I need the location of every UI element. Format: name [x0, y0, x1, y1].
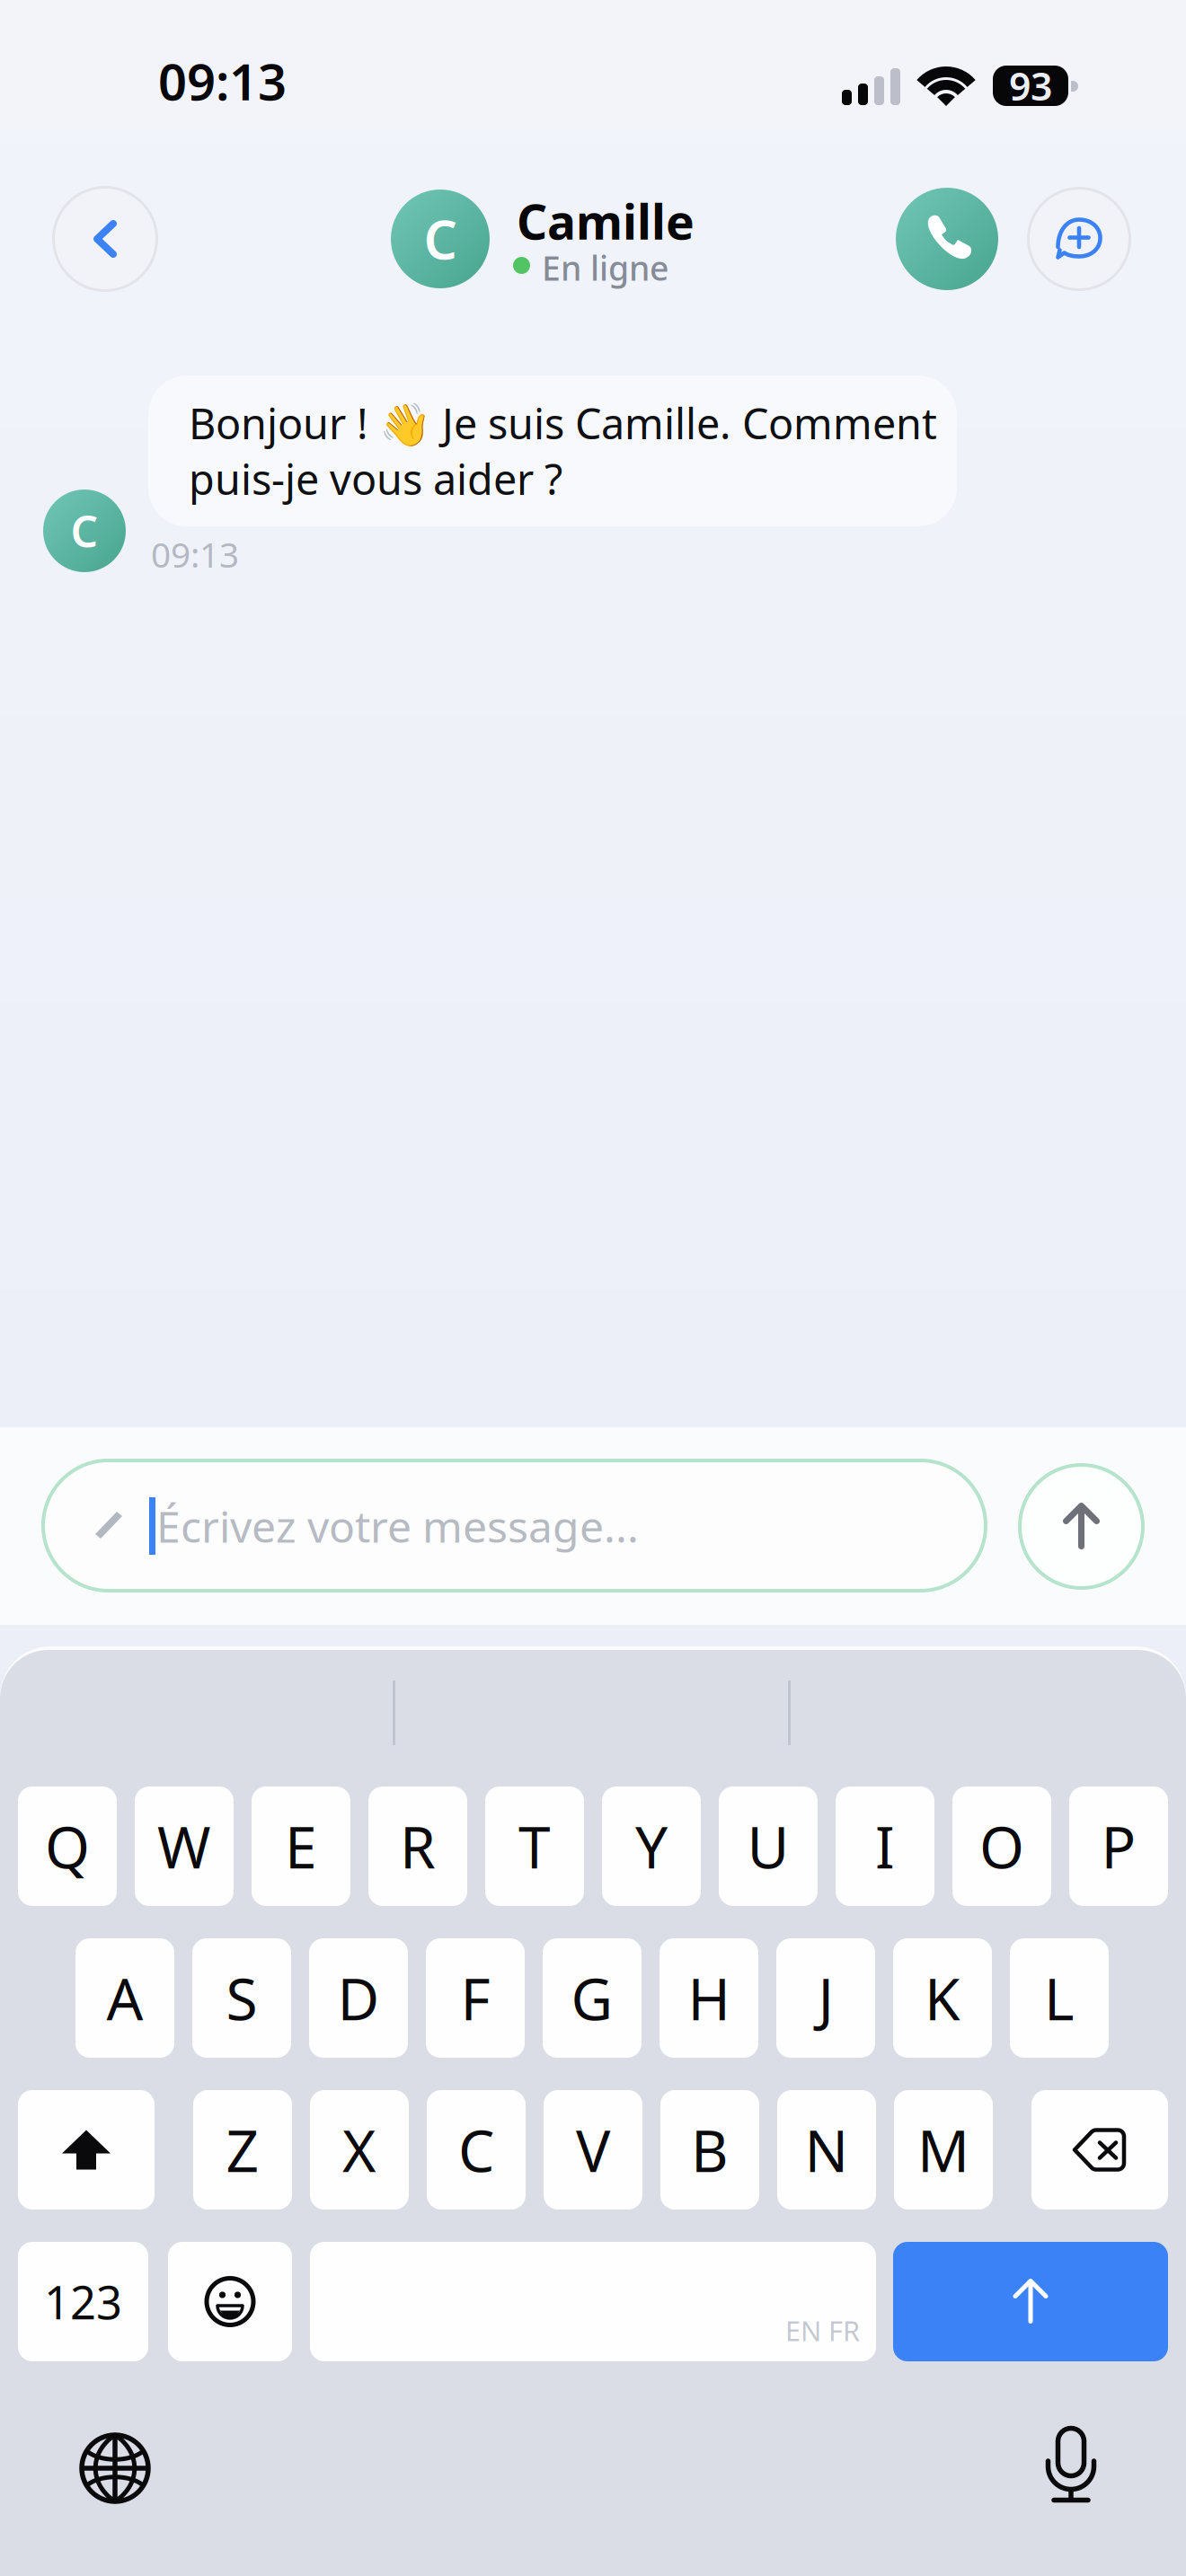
staticText: H — [688, 1960, 730, 2036]
button[interactable]: X — [310, 2090, 409, 2210]
staticText: E — [285, 1808, 317, 1884]
button[interactable]: T — [485, 1786, 584, 1906]
button[interactable]: D — [309, 1938, 408, 2058]
staticText: En ligne — [542, 245, 668, 290]
button[interactable]: A — [75, 1938, 174, 2058]
button[interactable]: Shift — [18, 2090, 155, 2210]
staticText: F — [460, 1960, 490, 2036]
button[interactable]: Dictate — [995, 2406, 1147, 2523]
staticText: W — [157, 1808, 211, 1884]
staticText: X — [342, 2112, 376, 2188]
staticText: M — [917, 2112, 969, 2188]
staticText: 123 — [44, 2271, 122, 2332]
button[interactable]: C — [427, 2090, 526, 2210]
staticText: Q — [45, 1808, 90, 1884]
button[interactable]: S — [192, 1938, 291, 2058]
staticText: G — [571, 1960, 613, 2036]
button[interactable]: Back — [52, 186, 158, 292]
button[interactable]: Return — [893, 2242, 1168, 2361]
staticText: O — [979, 1808, 1024, 1884]
button[interactable]: J — [776, 1938, 875, 2058]
staticText: N — [805, 2112, 849, 2188]
button[interactable]: New chat — [1027, 187, 1131, 291]
staticText: J — [818, 1960, 833, 2036]
staticText: R — [400, 1808, 436, 1884]
button[interactable]: Send — [1018, 1463, 1145, 1590]
staticText: Écrivez votre message... — [156, 1497, 639, 1555]
staticText: 93 — [1009, 60, 1052, 111]
button[interactable]: L — [1010, 1938, 1109, 2058]
staticText: 09:13 — [158, 47, 287, 114]
button[interactable]: M — [894, 2090, 993, 2210]
staticText: Camille — [517, 189, 695, 253]
staticText: C — [71, 502, 98, 559]
button[interactable]: F — [426, 1938, 525, 2058]
staticText: A — [106, 1960, 143, 2036]
button[interactable]: P — [1069, 1786, 1168, 1906]
staticText: Bonjour ! 👋 Je suis Camille. Comment pui… — [189, 395, 937, 506]
button[interactable]: U — [719, 1786, 818, 1906]
button[interactable]: Emoji — [168, 2242, 292, 2361]
staticText: D — [337, 1960, 380, 2036]
staticText: Y — [635, 1808, 668, 1884]
button[interactable]: K — [893, 1938, 992, 2058]
button[interactable]: Delete — [1031, 2090, 1168, 2210]
staticText: U — [747, 1808, 789, 1884]
staticText: I — [875, 1808, 895, 1884]
button[interactable]: G — [543, 1938, 642, 2058]
staticText: V — [576, 2112, 610, 2188]
staticText: S — [226, 1960, 257, 2036]
button[interactable]: Switch keyboard — [34, 2410, 196, 2527]
button[interactable]: Call — [896, 188, 998, 290]
staticText: C — [458, 2112, 494, 2188]
staticText: K — [925, 1960, 960, 2036]
staticText: P — [1101, 1808, 1136, 1884]
button[interactable]: H — [659, 1938, 758, 2058]
button[interactable]: Q — [18, 1786, 117, 1906]
staticText: T — [518, 1808, 551, 1884]
button[interactable]: 123 — [18, 2242, 148, 2361]
staticText: L — [1044, 1960, 1075, 2036]
button[interactable]: R — [368, 1786, 467, 1906]
button[interactable]: O — [952, 1786, 1051, 1906]
button[interactable]: W — [135, 1786, 234, 1906]
button[interactable]: V — [544, 2090, 642, 2210]
button[interactable]: I — [836, 1786, 934, 1906]
staticText: C — [424, 204, 457, 274]
button[interactable]: Écrivez votre message... — [41, 1459, 987, 1592]
staticText: B — [691, 2112, 729, 2188]
staticText: Z — [226, 2112, 259, 2188]
button[interactable]: Z — [193, 2090, 292, 2210]
button[interactable]: Y — [602, 1786, 701, 1906]
button[interactable]: Space — [310, 2242, 876, 2361]
staticText: EN FR — [785, 2312, 860, 2349]
button[interactable]: B — [660, 2090, 759, 2210]
button[interactable]: N — [777, 2090, 876, 2210]
button[interactable]: E — [252, 1786, 350, 1906]
staticText: 09:13 — [151, 531, 239, 577]
